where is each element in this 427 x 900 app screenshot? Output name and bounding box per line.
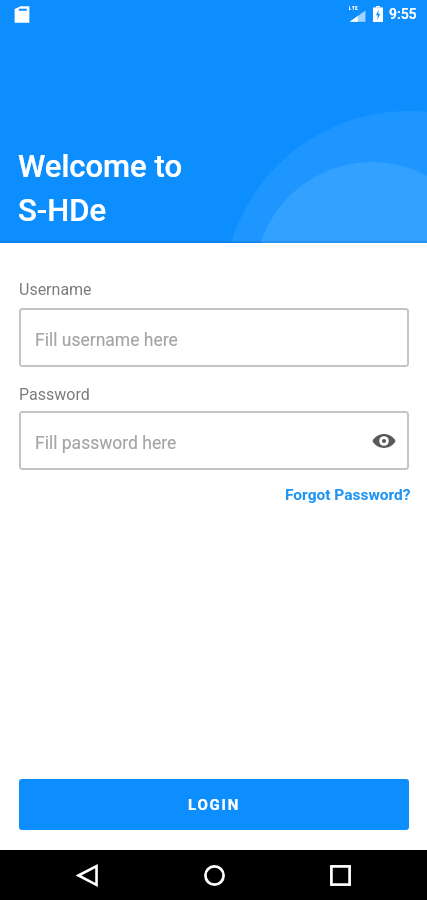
button[interactable]: Recents: [277, 850, 403, 900]
staticText: S-HDe: [18, 192, 107, 228]
staticText: Username: [19, 280, 92, 299]
button[interactable]: Back: [24, 850, 151, 900]
staticText: LOGIN: [188, 796, 241, 814]
button[interactable]: Forgot Password?: [285, 486, 411, 504]
button[interactable]: Fill username here: [19, 308, 409, 367]
staticText: Password: [19, 385, 90, 404]
staticText: Welcome to: [18, 148, 182, 184]
staticText: Fill username here: [35, 330, 178, 351]
button[interactable]: Home: [151, 850, 277, 900]
staticText: Fill password here: [35, 433, 177, 454]
staticText: 9:55: [389, 6, 417, 22]
button[interactable]: Show password: [367, 424, 401, 458]
button[interactable]: LOGIN: [19, 779, 409, 830]
button[interactable]: Fill password here: [19, 411, 409, 470]
